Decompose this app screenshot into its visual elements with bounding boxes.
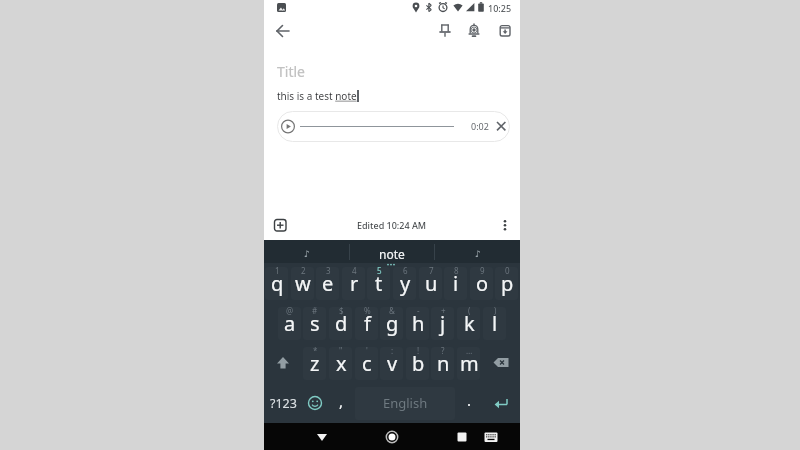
staticText: 7	[429, 265, 434, 276]
staticText: c	[362, 350, 372, 377]
staticText: n	[437, 350, 450, 377]
button[interactable]: )	[482, 303, 508, 343]
button[interactable]	[281, 119, 297, 135]
button[interactable]	[477, 423, 505, 450]
staticText: d	[335, 310, 348, 337]
staticText: "	[339, 345, 343, 356]
button[interactable]: ?	[430, 343, 456, 383]
staticText: &	[389, 305, 395, 316]
staticText: y	[400, 270, 411, 297]
button[interactable]: English	[354, 383, 456, 423]
staticText: 10:25	[488, 2, 512, 14]
button[interactable]: 3	[315, 263, 341, 303]
button[interactable]	[302, 383, 328, 423]
button[interactable]: #	[302, 303, 328, 343]
button[interactable]: !	[405, 343, 431, 383]
button[interactable]: :	[379, 343, 405, 383]
staticText: 0:02	[471, 120, 489, 132]
button[interactable]: 4	[341, 263, 367, 303]
button[interactable]: (	[456, 303, 482, 343]
staticText: note	[379, 246, 405, 262]
button[interactable]: +	[430, 303, 456, 343]
staticText: f	[364, 310, 371, 337]
staticText: h	[412, 310, 425, 337]
button[interactable]: ♪	[435, 240, 520, 263]
button[interactable]: 6	[392, 263, 418, 303]
staticText: Title	[277, 62, 305, 81]
staticText: (	[468, 305, 471, 316]
button[interactable]	[463, 20, 485, 42]
staticText: k	[464, 310, 475, 337]
button[interactable]: %	[354, 303, 380, 343]
staticText: )	[494, 305, 497, 316]
staticText: ?	[441, 345, 445, 356]
button[interactable]	[493, 118, 510, 135]
staticText: q	[271, 270, 284, 297]
button[interactable]	[495, 215, 515, 235]
button[interactable]	[264, 343, 302, 383]
staticText: English	[383, 394, 428, 412]
button[interactable]: note	[349, 240, 435, 263]
staticText: Edited 10:24 AM	[357, 219, 427, 231]
staticText: …	[466, 345, 473, 356]
staticText: z	[310, 350, 320, 377]
button[interactable]: ♪	[264, 240, 349, 263]
button[interactable]	[482, 383, 520, 423]
staticText: :	[391, 345, 394, 356]
staticText: 8	[454, 265, 459, 276]
button[interactable]: 2	[290, 263, 316, 303]
staticText: 4	[352, 265, 357, 276]
button[interactable]: "	[328, 343, 354, 383]
button[interactable]: …	[456, 343, 482, 383]
button[interactable]: 0	[494, 263, 520, 303]
button[interactable]: *	[302, 343, 328, 383]
button[interactable]	[272, 20, 294, 42]
button[interactable]	[270, 215, 290, 235]
staticText: t	[375, 270, 383, 297]
staticText: m	[460, 350, 479, 377]
staticText: a	[284, 310, 296, 337]
staticText: .	[467, 390, 472, 410]
button[interactable]	[482, 343, 520, 383]
staticText: !	[417, 345, 420, 356]
button[interactable]: @	[277, 303, 303, 343]
button[interactable]	[448, 423, 476, 450]
button[interactable]: 7	[418, 263, 444, 303]
staticText: '	[366, 345, 368, 356]
button[interactable]	[494, 20, 516, 42]
staticText: -	[417, 305, 420, 316]
button[interactable]: 1	[264, 263, 290, 303]
staticText: ?123	[270, 395, 297, 412]
button[interactable]: 5	[366, 263, 392, 303]
button[interactable]	[308, 423, 336, 450]
button[interactable]: 8	[443, 263, 469, 303]
button[interactable]: &	[379, 303, 405, 343]
button[interactable]	[434, 20, 456, 42]
staticText: 1	[275, 265, 280, 276]
staticText: %	[364, 305, 371, 316]
staticText: ♪	[304, 249, 310, 259]
staticText: ♪	[475, 249, 481, 259]
staticText: g	[386, 310, 399, 337]
staticText: i	[453, 270, 459, 297]
staticText: l	[492, 310, 498, 337]
button[interactable]: ,	[328, 383, 354, 423]
button[interactable]: 9	[469, 263, 495, 303]
button[interactable]: $	[328, 303, 354, 343]
button[interactable]: ?123	[264, 383, 302, 423]
staticText: 2	[301, 265, 306, 276]
staticText: j	[440, 310, 446, 337]
staticText: @	[286, 305, 294, 316]
staticText: this is a test note	[277, 89, 357, 103]
staticText: *	[313, 345, 318, 356]
button[interactable]: '	[354, 343, 380, 383]
staticText: s	[310, 310, 320, 337]
staticText: w	[295, 270, 311, 297]
staticText: o	[476, 270, 489, 297]
button[interactable]: .	[456, 383, 482, 423]
staticText: r	[350, 270, 359, 297]
staticText: p	[501, 270, 514, 297]
button[interactable]: -	[405, 303, 431, 343]
staticText: +	[441, 305, 446, 316]
button[interactable]	[378, 423, 406, 450]
